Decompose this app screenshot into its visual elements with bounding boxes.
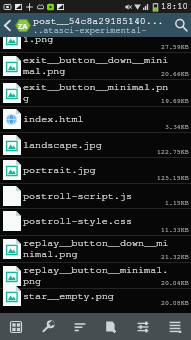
button[interactable]: 1.png bbox=[0, 37, 191, 52]
staticText: 1.png bbox=[23, 37, 170, 44]
staticText: 1.15KB bbox=[165, 200, 189, 207]
staticText: 27.59KB bbox=[161, 44, 189, 51]
button[interactable]: Settings bbox=[128, 313, 158, 340]
staticText: postroll-style.css bbox=[23, 216, 170, 226]
button[interactable]: Navigate up bbox=[0, 13, 15, 37]
staticText: 20.04KB bbox=[161, 280, 189, 287]
button[interactable]: replay__button__down__minimal.png bbox=[0, 235, 191, 262]
button[interactable]: replay__button__minimal.png bbox=[0, 262, 191, 288]
staticText: exit__button__down__minimal.png bbox=[23, 55, 170, 76]
button[interactable]: index.html bbox=[0, 106, 191, 132]
button[interactable]: postroll-style.css bbox=[0, 208, 191, 235]
staticText: ZA bbox=[18, 21, 28, 31]
staticText: 11.33KB bbox=[161, 227, 189, 234]
staticText: postroll-script.js bbox=[23, 191, 170, 201]
staticText: 21.32KB bbox=[161, 254, 189, 261]
staticText: 19.69KB bbox=[161, 98, 189, 105]
staticText: star__empty.png bbox=[23, 291, 170, 301]
staticText: replay__button__minimal.png bbox=[23, 265, 170, 286]
staticText: landscape.jpg bbox=[23, 140, 170, 150]
button[interactable]: portrait.jpg bbox=[0, 157, 191, 183]
button[interactable]: New file bbox=[96, 313, 126, 340]
staticText: replay__button__down__minimal.png bbox=[23, 238, 170, 259]
button[interactable]: star__empty.png bbox=[0, 288, 191, 302]
staticText: index.html bbox=[23, 114, 170, 124]
staticText: post__54c8a29185140... bbox=[33, 16, 164, 26]
staticText: 20.66KB bbox=[161, 71, 189, 78]
staticText: portrait.jpg bbox=[23, 165, 170, 175]
button[interactable]: postroll-script.js bbox=[0, 183, 191, 208]
button[interactable]: Search bbox=[171, 13, 191, 37]
button[interactable]: Sort bbox=[65, 313, 95, 340]
staticText: 122.75KB bbox=[157, 149, 189, 156]
staticText: 20.08KB bbox=[161, 300, 189, 307]
staticText: 3.34KB bbox=[165, 124, 189, 131]
button[interactable]: Menu bbox=[160, 313, 190, 340]
button[interactable]: exit__button__down__minimal.png bbox=[0, 52, 191, 79]
button[interactable]: View mode bbox=[1, 313, 31, 340]
staticText: exit__button__minimal.png bbox=[23, 82, 170, 103]
staticText: 18:10 bbox=[161, 2, 189, 11]
staticText: 125.15KB bbox=[157, 175, 189, 182]
staticText: ..atasci-experimental-success bbox=[33, 26, 171, 35]
button[interactable]: landscape.jpg bbox=[0, 132, 191, 157]
button[interactable]: exit__button__minimal.png bbox=[0, 79, 191, 106]
button[interactable]: Tools bbox=[33, 313, 63, 340]
